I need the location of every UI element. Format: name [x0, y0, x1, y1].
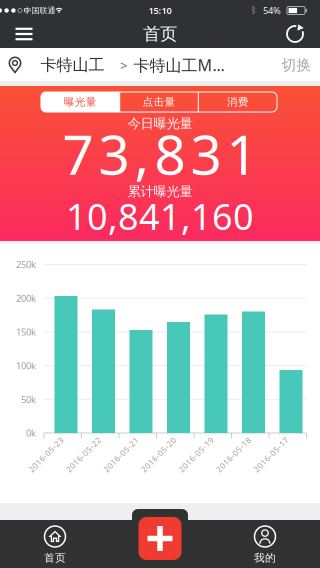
- staticText: 10,841,160: [66, 192, 254, 240]
- staticText: 消费: [227, 95, 249, 108]
- staticText: 累计曝光量: [127, 183, 192, 200]
- staticText: 中国联通: [23, 6, 55, 15]
- staticText: 点击量: [142, 95, 175, 108]
- staticText: 首页: [44, 551, 66, 564]
- staticText: 我的: [254, 551, 276, 564]
- button[interactable]: 我的: [225, 520, 305, 568]
- staticText: >: [120, 56, 128, 74]
- staticText: 73,831: [62, 117, 257, 190]
- staticText: 150k: [16, 326, 36, 338]
- staticText: 250k: [16, 258, 36, 271]
- staticText: 2016-05-17: [248, 449, 294, 460]
- staticText: 卡特山工: [40, 55, 104, 75]
- staticText: 2016-05-23: [23, 449, 69, 460]
- button[interactable]: 消费: [198, 92, 277, 112]
- staticText: 0k: [26, 427, 36, 439]
- button[interactable]: 曝光量: [41, 92, 120, 112]
- button[interactable]: 点击量: [120, 92, 198, 112]
- staticText: 2016-05-20: [135, 449, 181, 460]
- button[interactable]: 刷新: [275, 20, 315, 48]
- button[interactable]: 首页: [15, 520, 95, 568]
- staticText: 2016-05-19: [173, 449, 219, 460]
- staticText: ᛒ: [251, 6, 257, 15]
- staticText: 15:10: [148, 4, 171, 17]
- button[interactable]: 菜单: [4, 20, 44, 48]
- staticText: 曝光量: [64, 95, 97, 108]
- staticText: 200k: [16, 292, 36, 304]
- staticText: 卡特山工M...: [133, 54, 224, 76]
- staticText: 今日曝光量: [127, 115, 192, 132]
- staticText: 2016-05-21: [98, 449, 144, 460]
- button[interactable]: 新建: [138, 517, 181, 560]
- staticText: 100k: [16, 359, 36, 372]
- staticText: 50k: [21, 393, 36, 405]
- staticText: 2016-05-18: [210, 449, 256, 460]
- button[interactable]: 切换: [273, 48, 320, 81]
- staticText: 切换: [281, 56, 311, 74]
- staticText: 2016-05-22: [60, 449, 106, 460]
- staticText: 54%: [263, 4, 281, 17]
- staticText: 首页: [143, 23, 177, 45]
